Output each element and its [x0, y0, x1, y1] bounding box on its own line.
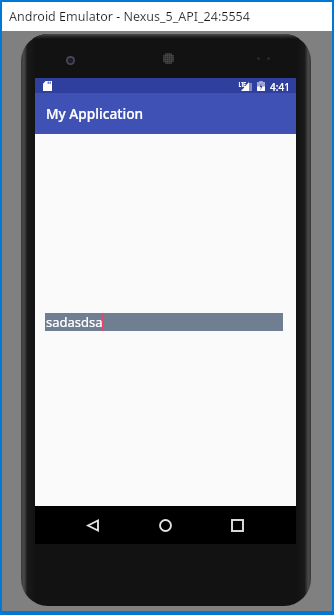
button[interactable]: Recents — [213, 506, 261, 544]
button[interactable]: My Application — [35, 93, 296, 134]
staticText: sadasdsa — [46, 313, 103, 331]
staticText: Android Emulator - Nexus_5_API_24:5554 — [9, 8, 250, 25]
button[interactable]: Home — [141, 506, 189, 544]
button[interactable]: Back — [69, 506, 117, 544]
staticText: 4:41 — [270, 80, 290, 94]
button[interactable]: sadasdsa — [45, 313, 283, 331]
staticText: My Application — [46, 104, 144, 123]
